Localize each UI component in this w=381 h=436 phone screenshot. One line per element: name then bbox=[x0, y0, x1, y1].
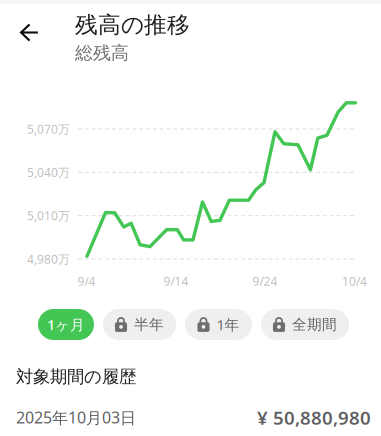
staticText: 総残高 bbox=[75, 42, 129, 64]
staticText: 9/14 bbox=[163, 273, 188, 289]
button[interactable]: Back bbox=[7, 10, 51, 54]
staticText: 2025年10月03日 bbox=[16, 407, 136, 428]
button[interactable]: 1年 bbox=[185, 309, 252, 340]
staticText: 9/4 bbox=[77, 273, 95, 289]
staticText: 残高の推移 bbox=[75, 11, 190, 39]
staticText: 9/24 bbox=[253, 273, 278, 289]
staticText: 5,010万 bbox=[27, 208, 70, 224]
button[interactable]: 半年 bbox=[103, 309, 176, 340]
staticText: 1ヶ月 bbox=[47, 315, 85, 334]
staticText: 全期間 bbox=[292, 315, 337, 333]
staticText: 対象期間の履歴 bbox=[16, 366, 136, 387]
staticText: 5,040万 bbox=[27, 164, 70, 180]
staticText: 半年 bbox=[134, 315, 164, 333]
staticText: 4,980万 bbox=[27, 251, 70, 267]
staticText: ¥ 50,880,980 bbox=[257, 405, 371, 430]
staticText: 10/4 bbox=[342, 273, 367, 289]
button[interactable]: 1ヶ月 bbox=[38, 309, 94, 340]
staticText: 1年 bbox=[216, 315, 239, 334]
button[interactable]: 全期間 bbox=[261, 309, 349, 340]
staticText: 5,070万 bbox=[27, 121, 70, 137]
